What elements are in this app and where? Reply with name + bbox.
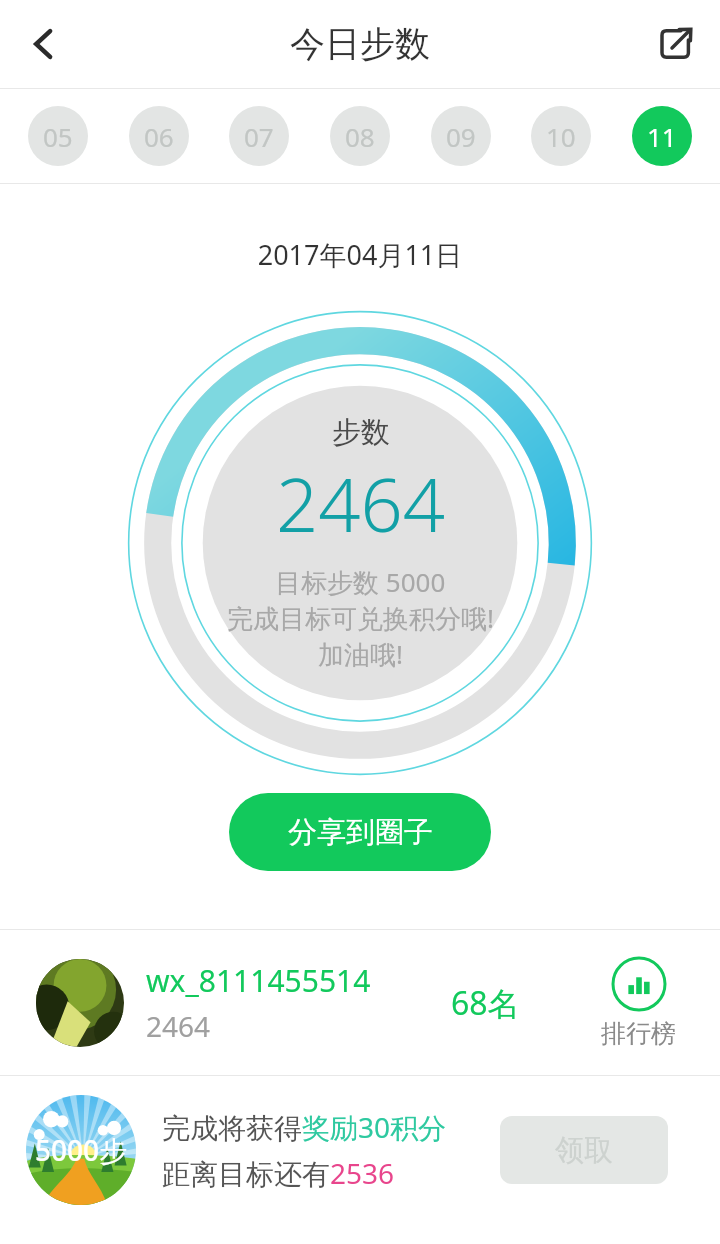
- staticText: 09: [446, 119, 476, 154]
- button[interactable]: 05: [28, 106, 88, 166]
- button[interactable]: wx_8111455514: [0, 930, 720, 1075]
- staticText: 06: [144, 119, 174, 154]
- staticText: 2017年04月11日: [0, 236, 720, 273]
- staticText: 今日步数: [290, 22, 430, 66]
- staticText: 完成将获得奖励30积分: [162, 1108, 447, 1146]
- staticText: 步数: [332, 414, 390, 451]
- staticText: wx_8111455514: [146, 960, 371, 1001]
- staticText: 距离目标还有2536: [162, 1154, 395, 1192]
- staticText: 排行榜: [601, 1018, 676, 1049]
- button[interactable]: 09: [431, 106, 491, 166]
- staticText: 5000步: [35, 1131, 128, 1169]
- staticText: 目标步数 5000: [275, 564, 446, 600]
- button[interactable]: 06: [129, 106, 189, 166]
- staticText: 领取: [555, 1132, 613, 1169]
- button[interactable]: 领取: [500, 1116, 668, 1184]
- button[interactable]: 07: [229, 106, 289, 166]
- button[interactable]: 分享到圈子: [229, 793, 491, 871]
- staticText: 08: [345, 119, 375, 154]
- button[interactable]: Share: [632, 0, 720, 88]
- staticText: 10: [546, 119, 576, 154]
- staticText: 2464: [146, 1007, 211, 1045]
- staticText: 11: [647, 119, 677, 154]
- staticText: 分享到圈子: [288, 814, 433, 851]
- staticText: 05: [43, 119, 73, 154]
- staticText: 加油哦!: [318, 636, 403, 672]
- button[interactable]: 08: [330, 106, 390, 166]
- button[interactable]: 10: [531, 106, 591, 166]
- staticText: 完成目标可兑换积分哦!: [227, 600, 494, 636]
- button[interactable]: 11: [632, 106, 692, 166]
- staticText: 07: [244, 119, 274, 154]
- button[interactable]: Back: [0, 0, 88, 88]
- staticText: 2464: [276, 453, 446, 554]
- staticText: 68名: [451, 981, 520, 1025]
- button[interactable]: 排行榜: [601, 956, 676, 1049]
